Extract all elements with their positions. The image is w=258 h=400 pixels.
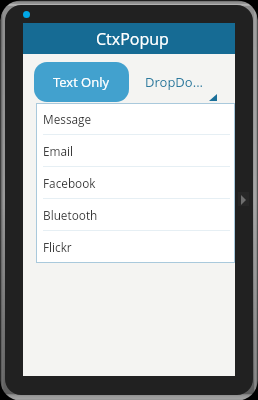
button[interactable]: Flickr — [36, 231, 235, 263]
staticText: Message — [43, 111, 92, 127]
button[interactable]: DropDo... — [128, 62, 220, 102]
staticText: CtxPopup — [96, 28, 169, 50]
staticText: Text Only — [53, 73, 110, 91]
staticText: Flickr — [43, 239, 72, 255]
button[interactable]: Email — [36, 135, 235, 167]
other: More tabs — [209, 94, 217, 101]
button[interactable]: Text Only — [34, 62, 129, 102]
staticText: Facebook — [43, 175, 96, 191]
staticText: Bluetooth — [43, 207, 98, 223]
other: Side button — [238, 192, 249, 206]
staticText: Email — [43, 143, 74, 159]
button[interactable]: Message — [36, 103, 235, 135]
button[interactable]: Facebook — [36, 167, 235, 199]
staticText: DropDo... — [145, 73, 204, 91]
button[interactable]: Bluetooth — [36, 199, 235, 231]
